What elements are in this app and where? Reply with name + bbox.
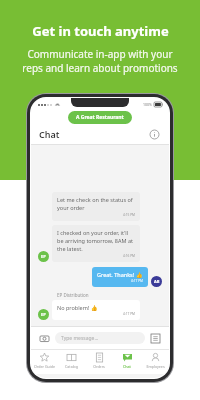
staticText: 4:15 PM — [123, 213, 135, 217]
button[interactable]: I checked on your order, it'll be arrivi… — [52, 225, 140, 262]
staticText: 4:17 PM — [123, 312, 135, 316]
button[interactable]: Let me check on the status of your order — [52, 192, 140, 221]
button[interactable]: Chat — [113, 350, 141, 374]
button[interactable]: Great. Thanks! 👍 — [92, 267, 148, 287]
staticText: A Great Restaurant — [76, 114, 124, 121]
staticText: AB — [154, 279, 160, 284]
staticText: Chat — [123, 364, 131, 369]
staticText: 4:17 PM — [131, 279, 143, 283]
button[interactable]: Send — [149, 332, 162, 345]
button[interactable]: Type message... — [55, 332, 145, 344]
staticText: Communicate in-app with your reps and le… — [22, 47, 178, 75]
staticText: EP Distribution — [57, 292, 89, 298]
staticText: Orders — [93, 364, 105, 369]
button[interactable]: Chat information — [148, 128, 161, 141]
staticText: 4:16 PM — [123, 254, 135, 258]
button[interactable]: Orders — [85, 350, 113, 374]
staticText: EP — [41, 254, 46, 259]
staticText: Catalog — [65, 364, 78, 369]
staticText: I checked on your order, it'll be arrivi… — [57, 229, 133, 253]
staticText: EP — [41, 312, 46, 317]
button[interactable]: No problem! 👍 — [52, 300, 140, 320]
button[interactable]: A Great Restaurant — [68, 111, 132, 124]
staticText: 100% — [143, 102, 152, 107]
staticText: No problem! 👍 — [57, 304, 98, 311]
button[interactable]: Order Guide — [31, 350, 58, 374]
staticText: Get in touch anytime — [32, 22, 169, 40]
staticText: Type message... — [61, 335, 99, 342]
staticText: Let me check on the status of your order — [57, 196, 133, 212]
button[interactable]: Catalog — [58, 350, 85, 374]
staticText: Employees — [146, 364, 165, 369]
staticText: Great. Thanks! 👍 — [97, 271, 143, 278]
staticText: Chat — [39, 128, 60, 140]
staticText: Order Guide — [34, 364, 55, 369]
button[interactable]: Employees — [141, 350, 169, 374]
button[interactable]: Attach photo — [38, 332, 51, 345]
